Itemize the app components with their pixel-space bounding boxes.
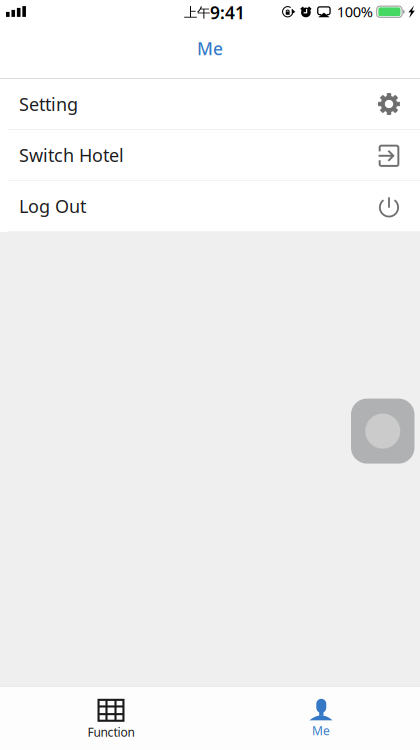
button[interactable]: AssistiveTouch [351, 399, 414, 464]
button[interactable]: Function [61, 687, 161, 750]
button[interactable]: Me [0, 25, 420, 78]
button[interactable]: Switch Hotel [0, 130, 420, 181]
staticText: Setting [19, 92, 78, 116]
staticText: 100% [337, 1, 373, 21]
button[interactable]: Me [271, 687, 371, 750]
staticText: Switch Hotel [19, 143, 124, 167]
button[interactable]: Log Out [0, 181, 420, 232]
staticText: 9:41 [210, 1, 245, 24]
button[interactable]: Setting [0, 79, 420, 130]
staticText: Me [197, 37, 223, 60]
staticText: 上午 [184, 4, 210, 21]
staticText: Function [87, 724, 134, 740]
staticText: Me [312, 722, 330, 739]
staticText: Log Out [19, 194, 86, 218]
